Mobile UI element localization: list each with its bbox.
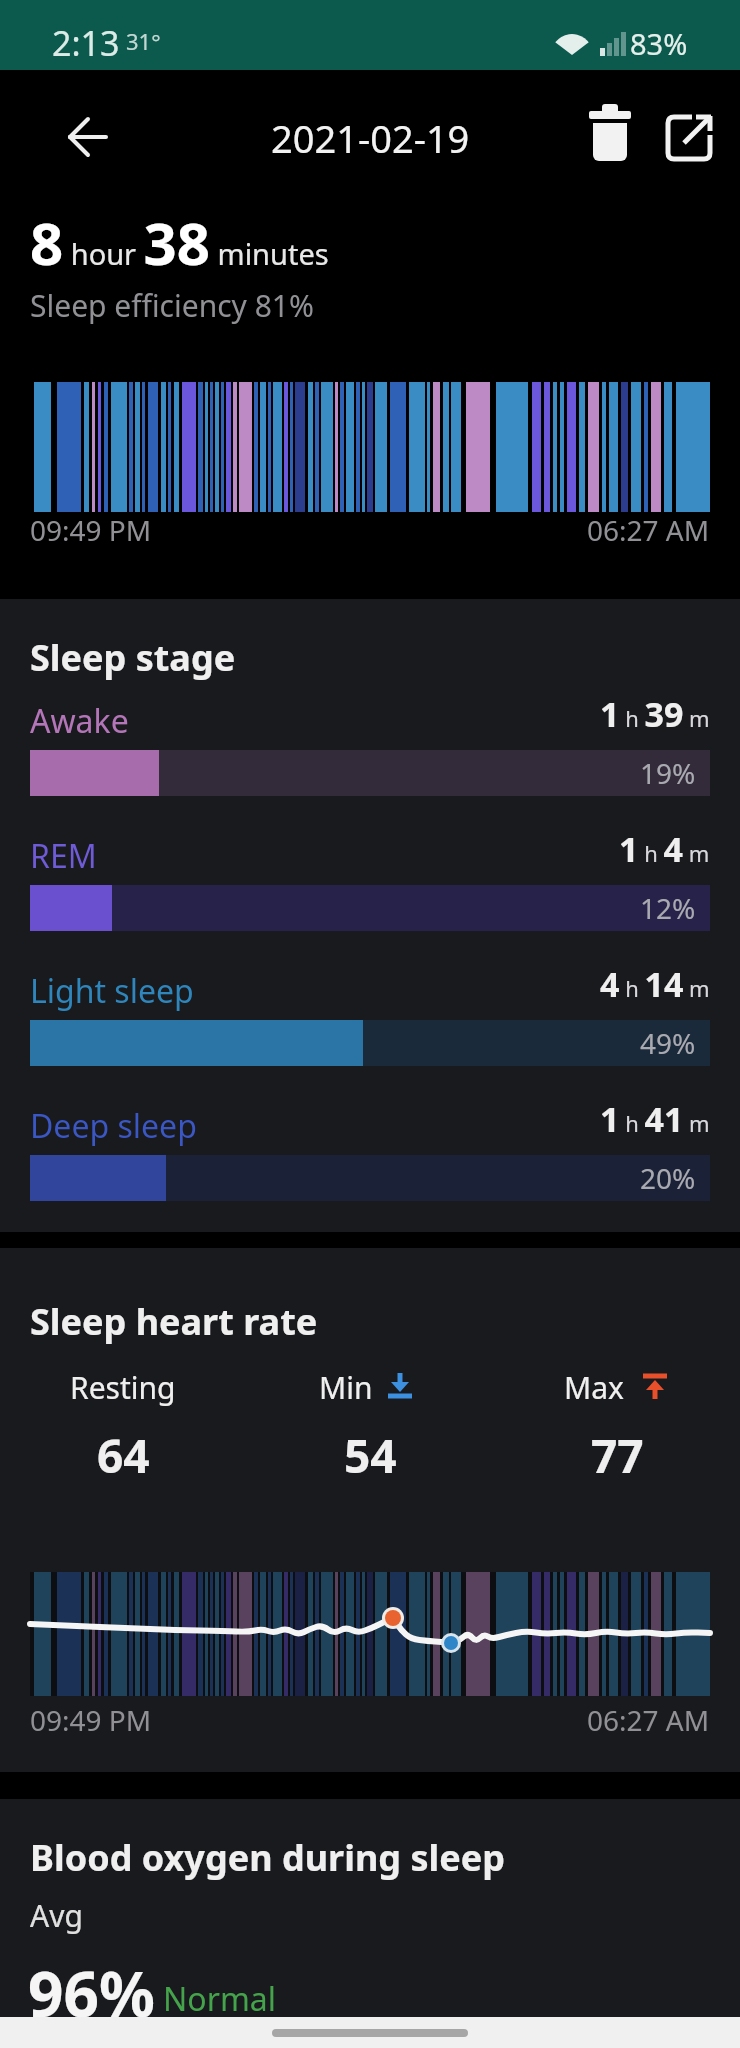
staticText: 4 h 14 m <box>600 961 710 1007</box>
staticText: 20% <box>640 1159 696 1197</box>
staticText: Max <box>564 1367 624 1408</box>
staticText: 19% <box>640 754 696 792</box>
staticText: 49% <box>640 1024 696 1062</box>
staticText: Sleep efficiency 81% <box>30 285 314 326</box>
staticText: 77 <box>591 1424 644 1487</box>
staticText: Awake <box>30 699 129 743</box>
staticText: 64 <box>97 1424 150 1487</box>
staticText: Sleep heart rate <box>30 1297 318 1346</box>
staticText: 96% <box>28 1951 155 2035</box>
staticText: Sleep stage <box>30 633 236 682</box>
staticText: Resting <box>70 1367 176 1408</box>
staticText: 83% <box>630 24 688 63</box>
button[interactable] <box>58 107 118 167</box>
staticText: 8 hour 38 minutes <box>30 203 329 282</box>
staticText: 1 h 39 m <box>600 691 710 737</box>
button[interactable] <box>658 105 720 167</box>
staticText: 09:49 PM <box>30 1701 152 1739</box>
staticText: Deep sleep <box>30 1104 197 1148</box>
staticText: Avg <box>30 1895 83 1936</box>
button[interactable] <box>580 100 640 170</box>
staticText: 2:13 <box>52 20 120 66</box>
staticText: Normal <box>163 1977 277 2021</box>
staticText: 54 <box>344 1424 397 1487</box>
staticText: REM <box>30 834 97 878</box>
staticText: 09:49 PM <box>30 511 152 549</box>
staticText: 2021-02-19 <box>271 112 470 164</box>
staticText: Min <box>319 1367 373 1408</box>
staticText: 1 h 41 m <box>600 1096 710 1142</box>
staticText: 31° <box>126 26 161 56</box>
staticText: 12% <box>640 889 696 927</box>
staticText: 06:27 AM <box>587 511 710 549</box>
staticText: Light sleep <box>30 969 194 1013</box>
staticText: Blood oxygen during sleep <box>30 1833 505 1882</box>
staticText: 1 h 4 m <box>619 826 710 872</box>
staticText: 06:27 AM <box>587 1701 710 1739</box>
